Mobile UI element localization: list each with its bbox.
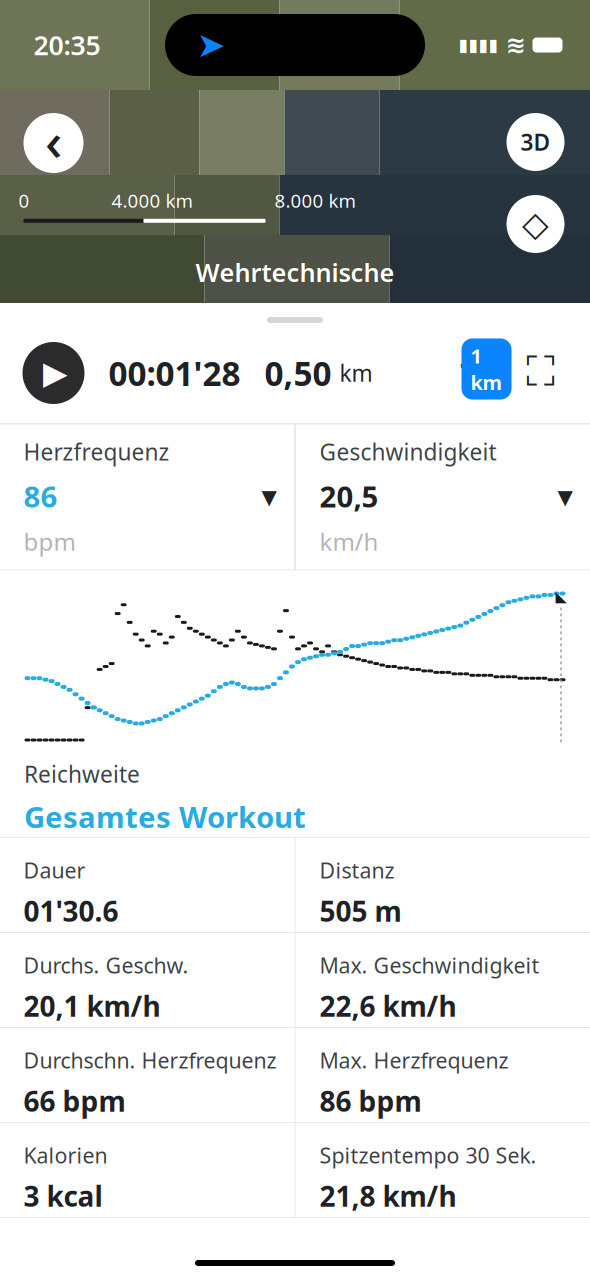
staticText: Wehrtechnische [195,255,394,289]
staticText: ➤ [196,25,225,65]
staticText: ↻ [457,353,495,405]
staticText: ≋ [505,31,525,59]
staticText: 20:35 [33,27,100,63]
staticText: km/h [319,526,378,557]
staticText: Geschwindigkeit [319,436,496,467]
staticText: 22,6 km/h [319,987,456,1024]
button[interactable]: Map layers [506,195,564,253]
staticText: 86 bpm [319,1082,421,1119]
staticText: 3 kcal [23,1177,102,1214]
staticText: ▮▮▮▮ [458,35,498,55]
staticText: Reichweite [24,759,140,789]
staticText: 00:01'28 [108,351,240,395]
staticText: km [339,358,372,388]
staticText: 0,50 [264,351,331,395]
staticText: ▶ [43,355,68,391]
staticText: 4.000 km [111,188,192,213]
button[interactable]: Reichweite [0,749,590,837]
button[interactable]: Start [22,342,84,404]
staticText: ◇ [522,204,549,244]
staticText: Herzfrequenz [23,436,169,467]
staticText: Max. Herzfrequenz [319,1046,508,1074]
staticText: 20,5 [319,477,378,516]
staticText: ⛶ [526,353,555,393]
staticText: Durchs. Geschw. [23,951,188,979]
button[interactable]: 3D map [506,113,564,171]
staticText: Distanz [319,856,394,884]
button[interactable]: Lap distance [438,344,514,402]
button[interactable]: Herzfrequenz [0,424,294,570]
staticText: bpm [23,526,75,557]
staticText: 66 bpm [23,1082,125,1119]
staticText: 01'30.6 [23,892,118,929]
staticText: ▼ [261,486,276,508]
staticText: Spitzentempo 30 Sek. [319,1141,536,1169]
button[interactable]: Geschwindigkeit [295,424,590,570]
staticText: 21,8 km/h [319,1177,456,1214]
staticText: 1 km [470,342,502,395]
button[interactable]: Full screen [514,347,566,399]
staticText: 0 [18,188,29,213]
staticText: 3D [520,127,550,157]
staticText: Durchschn. Herzfrequenz [23,1046,276,1074]
staticText: 86 [23,477,57,516]
staticText: Gesamtes Workout [24,797,306,836]
staticText: ▼ [557,486,572,508]
staticText: Dauer [23,856,85,884]
staticText: ‹ [45,105,62,175]
button[interactable]: Back [23,113,83,173]
staticText: Kalorien [23,1141,107,1169]
staticText: 20,1 km/h [23,987,160,1024]
staticText: Max. Geschwindigkeit [319,951,539,979]
staticText: 505 m [319,892,401,929]
staticText: ◣ [555,588,566,605]
staticText: 8.000 km [274,188,355,213]
